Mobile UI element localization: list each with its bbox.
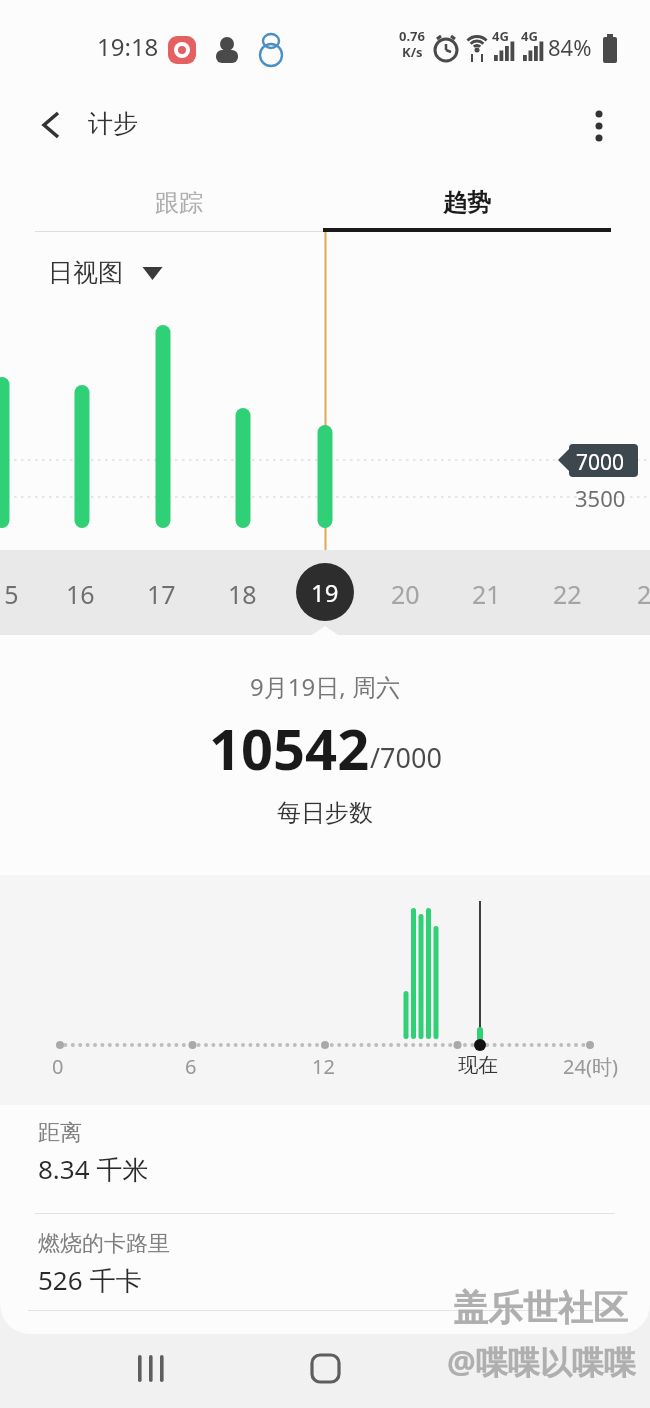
staticText: K/s	[402, 43, 423, 61]
staticText: 19:18	[97, 30, 159, 63]
button[interactable]	[120, 1338, 184, 1398]
staticText: 每日步数	[0, 798, 650, 828]
staticText: 日视图	[48, 257, 123, 288]
button[interactable]: 日视图	[40, 248, 180, 292]
staticText: 距离	[38, 1119, 82, 1147]
button[interactable]: 22	[553, 577, 582, 611]
staticText: 燃烧的卡路里	[38, 1230, 170, 1258]
staticText: 盖乐世社区	[453, 1286, 628, 1330]
staticText: 现在	[458, 1053, 498, 1078]
staticText: 趋势	[443, 188, 491, 218]
staticText: 526 千卡	[38, 1262, 142, 1298]
button[interactable]: 18	[228, 577, 257, 611]
staticText: @喋喋以喋喋	[447, 1340, 636, 1384]
staticText: 4G	[521, 27, 538, 45]
staticText: 24(时)	[563, 1053, 618, 1080]
staticText: 10542	[209, 710, 370, 786]
button[interactable]: 跟踪	[35, 170, 323, 235]
staticText: 0	[52, 1053, 64, 1080]
staticText: 跟踪	[155, 188, 203, 218]
button[interactable]: 15	[0, 577, 19, 611]
button[interactable]	[575, 98, 623, 154]
button[interactable]: 17	[147, 577, 176, 611]
button[interactable]	[30, 98, 74, 154]
button[interactable]: 20	[391, 577, 420, 611]
button[interactable]: 燃烧的卡路里	[0, 1214, 650, 1312]
staticText: /7000	[370, 739, 442, 776]
staticText: 4G	[492, 27, 509, 45]
staticText: 12	[312, 1053, 335, 1080]
staticText: 9月19日, 周六	[0, 670, 650, 703]
staticText: 84%	[548, 32, 592, 62]
staticText: 8.34 千米	[38, 1151, 149, 1187]
button[interactable]: 19	[296, 563, 354, 621]
staticText: 6	[185, 1053, 197, 1080]
button[interactable]	[293, 1338, 357, 1398]
button[interactable]: 21	[472, 577, 501, 611]
staticText: 计步	[88, 108, 138, 139]
staticText: 0.76	[399, 27, 425, 45]
button[interactable]: 趋势	[323, 170, 611, 235]
button[interactable]: 距离	[0, 1105, 650, 1213]
staticText: 7000	[576, 448, 625, 477]
button[interactable]: 16	[66, 577, 95, 611]
staticText: 19	[311, 576, 339, 609]
staticText: 3500	[575, 483, 626, 513]
button[interactable]: 23	[637, 577, 650, 611]
